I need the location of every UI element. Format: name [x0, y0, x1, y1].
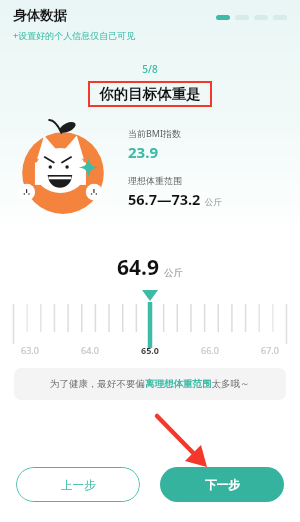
button[interactable]: 上一步: [16, 467, 140, 502]
staticText: 下一步: [205, 478, 240, 492]
staticText: 63.0: [21, 344, 39, 356]
staticText: +设置好的个人信息仅自己可见: [13, 29, 136, 41]
staticText: 身体数据: [13, 7, 67, 24]
staticText: 64.0: [81, 344, 99, 356]
staticText: 56.7—73.2 公斤: [128, 189, 222, 209]
staticText: 你的目标体重是: [99, 85, 201, 103]
staticText: 5/8: [0, 62, 300, 76]
staticText: 64.9: [117, 253, 159, 282]
staticText: 为了健康，最好不要偏离理想体重范围太多哦～: [50, 378, 250, 390]
staticText: 23.9: [128, 142, 158, 162]
staticText: 当前BMI指数: [128, 127, 182, 139]
staticText: 67.0: [261, 344, 279, 356]
staticText: 66.0: [201, 344, 219, 356]
staticText: 上一步: [61, 478, 96, 492]
staticText: 公斤: [164, 267, 183, 279]
staticText: 理想体重范围: [128, 175, 182, 186]
button[interactable]: 下一步: [160, 467, 284, 502]
staticText: 65.0: [141, 344, 159, 356]
